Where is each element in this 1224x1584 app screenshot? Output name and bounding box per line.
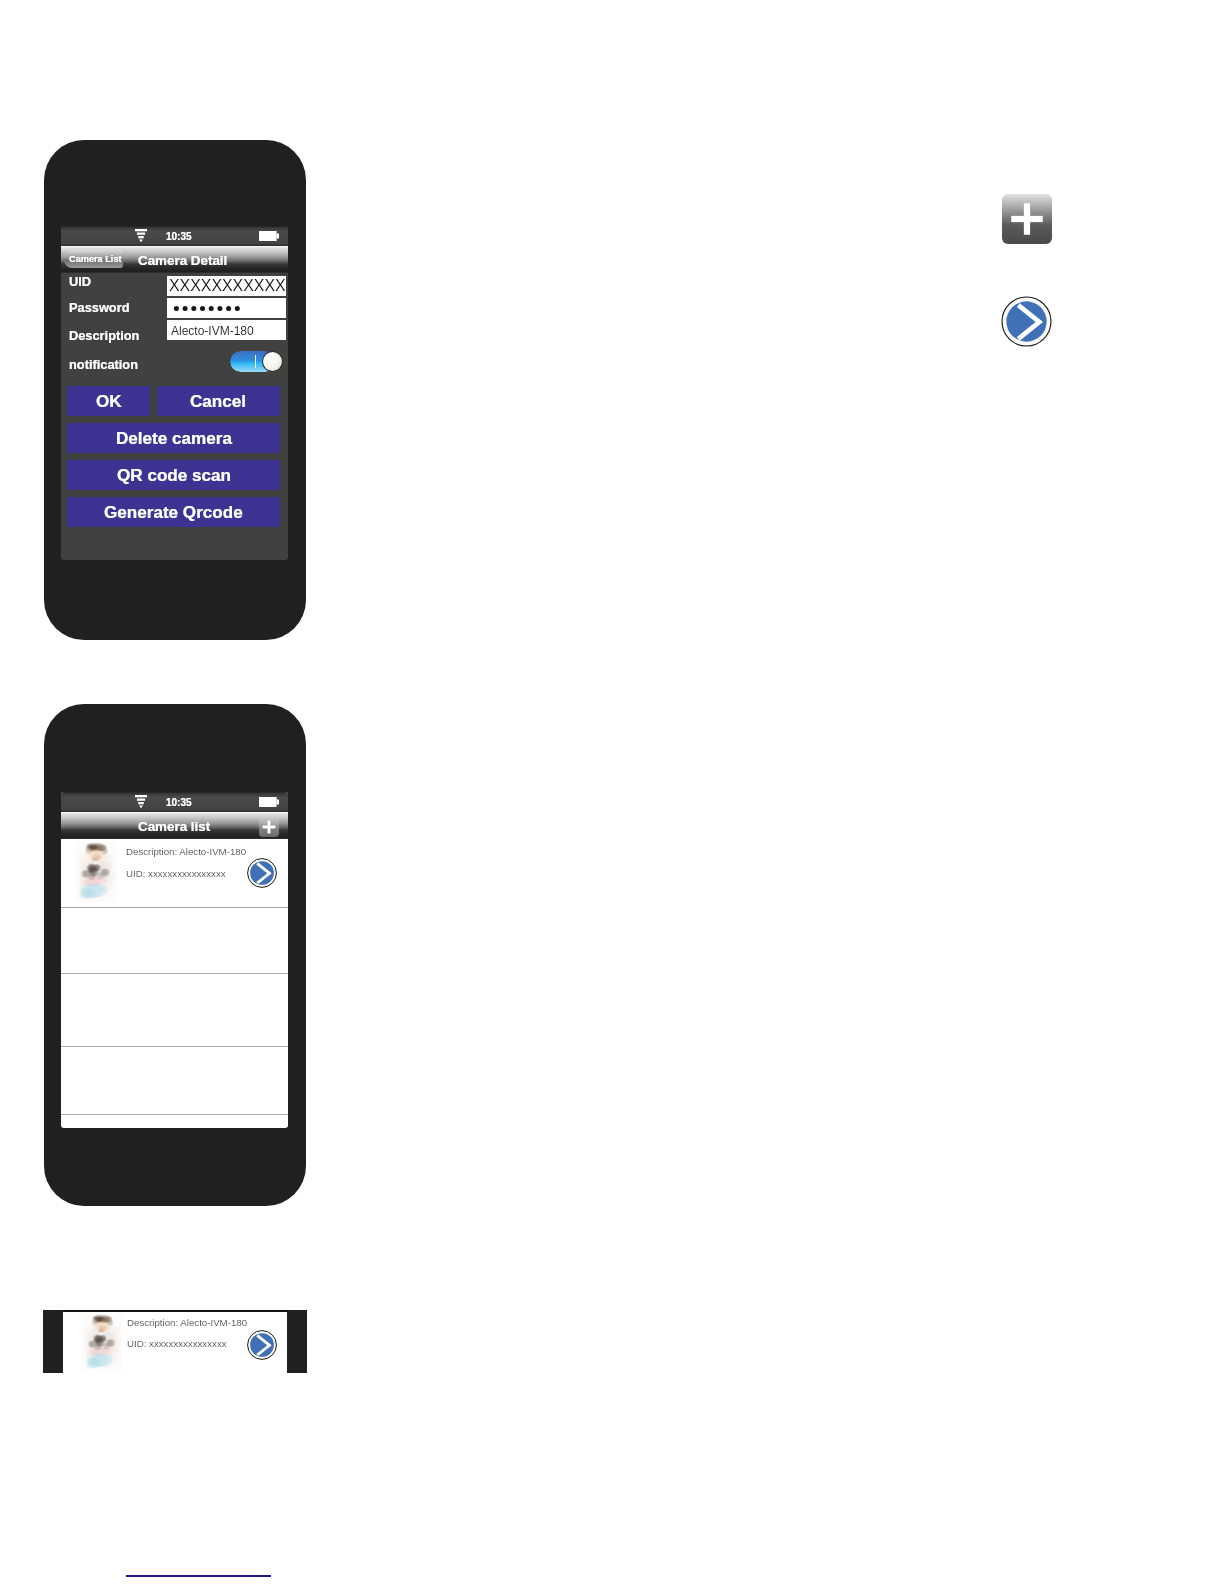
staticText: Alecto-IVM-180 <box>171 324 254 337</box>
button[interactable]: OK <box>67 386 150 416</box>
button[interactable]: Description: Alecto-IVM-180 <box>61 839 288 907</box>
staticText: Camera Detail <box>138 253 228 268</box>
button[interactable]: Camera List <box>64 250 123 268</box>
staticText: QR code scan <box>117 466 231 485</box>
button[interactable]: Generate Qrcode <box>67 497 280 527</box>
staticText: OK <box>96 392 122 411</box>
staticText: Camera List <box>69 254 122 264</box>
staticText: 10:35 <box>166 797 192 808</box>
button[interactable]: Add <box>1002 194 1052 244</box>
staticText: UID: xxxxxxxxxxxxxxxx <box>126 868 226 879</box>
button[interactable]: Open camera detail <box>247 858 277 888</box>
staticText: Camera list <box>138 819 211 834</box>
button[interactable]: QR code scan <box>67 460 280 490</box>
staticText: notification <box>69 357 138 371</box>
staticText: XXXXXXXXXXX <box>169 277 286 295</box>
staticText: Password <box>69 300 130 314</box>
staticText: Cancel <box>190 392 247 411</box>
staticText: UID: xxxxxxxxxxxxxxxx <box>127 1338 227 1349</box>
button[interactable]: Delete camera <box>67 423 280 453</box>
staticText: Description <box>69 328 140 342</box>
button[interactable]: Open camera detail <box>247 1330 277 1360</box>
staticText: Description: Alecto-IVM-180 <box>126 846 247 857</box>
staticText: UID <box>69 274 92 288</box>
button[interactable]: Cancel <box>157 386 280 416</box>
staticText: Delete camera <box>116 429 232 448</box>
button[interactable]: notification toggle <box>230 351 283 372</box>
staticText: 10:35 <box>166 231 192 242</box>
button[interactable]: Add camera <box>259 817 279 837</box>
button[interactable]: Next <box>1001 296 1052 347</box>
staticText: Description: Alecto-IVM-180 <box>127 1317 248 1328</box>
staticText: Generate Qrcode <box>104 503 243 522</box>
